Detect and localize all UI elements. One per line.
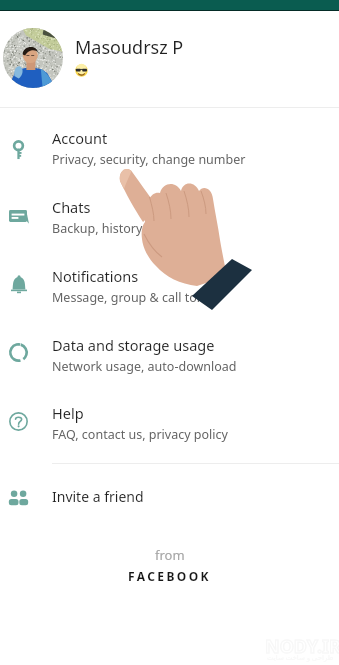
staticText: Invite a friend [52,487,144,506]
button[interactable]: Invite a friend [0,474,339,518]
staticText: Message, group & call tones [52,289,218,306]
staticText: Data and storage usage [52,335,215,355]
staticText: Network usage, auto-download [52,358,237,375]
staticText: FACEBOOK [128,568,211,584]
button[interactable]: Account [0,126,339,170]
staticText: Privacy, security, change number [52,151,246,168]
button[interactable]: Help [0,401,339,445]
staticText: Notifications [52,266,139,286]
staticText: Backup, history, theme [52,220,187,237]
button[interactable]: Chats [0,195,339,239]
staticText: Account [52,128,108,148]
staticText: FAQ, contact us, privacy policy [52,426,228,443]
staticText: Chats [52,197,91,217]
button[interactable]: Data and storage usage [0,333,339,377]
button[interactable]: Masoudrsz P [0,11,339,105]
staticText: from [155,546,185,564]
button[interactable]: Notifications [0,264,339,308]
staticText: Help [52,403,84,423]
staticText: Masoudrsz P [75,35,184,60]
